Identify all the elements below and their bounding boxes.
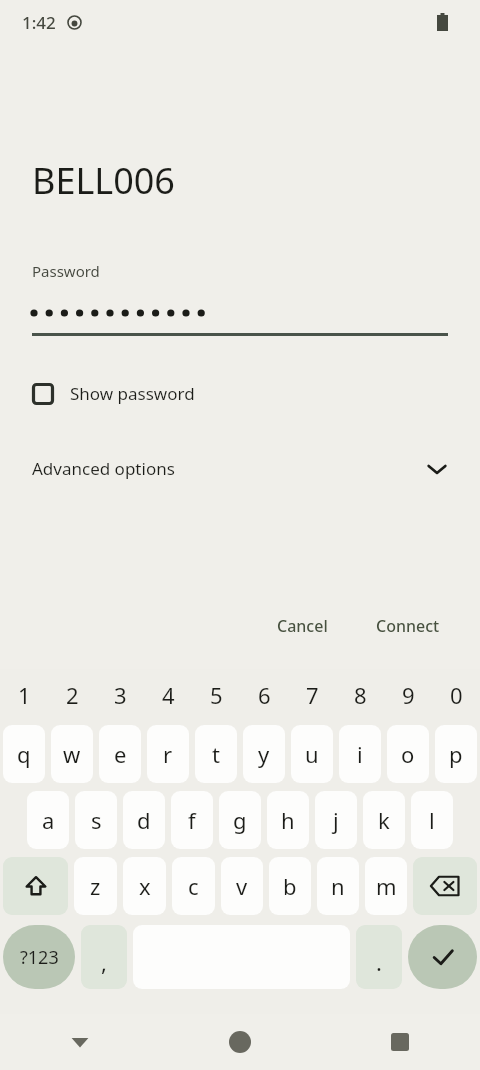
button[interactable]: 7: [288, 669, 336, 721]
staticText: y: [258, 739, 270, 769]
button[interactable]: Recents: [320, 1014, 480, 1070]
staticText: 9: [402, 680, 415, 710]
staticText: 4: [162, 680, 175, 710]
button[interactable]: ?123: [3, 925, 75, 989]
button[interactable]: .: [356, 925, 402, 989]
staticText: 2: [66, 680, 79, 710]
button[interactable]: k: [363, 791, 405, 849]
button[interactable]: s: [75, 791, 117, 849]
button[interactable]: Home: [160, 1014, 320, 1070]
staticText: 1: [18, 680, 31, 710]
button[interactable]: h: [267, 791, 309, 849]
button[interactable]: Shift: [3, 857, 68, 915]
button[interactable]: f: [171, 791, 213, 849]
staticText: g: [233, 805, 247, 835]
staticText: f: [188, 805, 196, 835]
button[interactable]: Cancel: [261, 605, 344, 647]
button[interactable]: 6: [240, 669, 288, 721]
staticText: z: [90, 871, 101, 901]
staticText: Cancel: [277, 615, 328, 637]
button[interactable]: q: [3, 725, 45, 783]
button[interactable]: c: [172, 857, 215, 915]
button[interactable]: 4: [144, 669, 192, 721]
button[interactable]: 3: [96, 669, 144, 721]
staticText: i: [357, 739, 363, 769]
button[interactable]: z: [74, 857, 117, 915]
button[interactable]: d: [123, 791, 165, 849]
staticText: n: [331, 871, 345, 901]
button[interactable]: i: [339, 725, 381, 783]
staticText: .: [376, 947, 382, 977]
staticText: ?123: [20, 945, 59, 970]
button[interactable]: 1: [0, 669, 48, 721]
button[interactable]: g: [219, 791, 261, 849]
button[interactable]: x: [123, 857, 166, 915]
button[interactable]: 5: [192, 669, 240, 721]
staticText: Advanced options: [32, 457, 175, 480]
staticText: x: [139, 871, 151, 901]
staticText: Show password: [70, 382, 195, 405]
staticText: h: [281, 805, 295, 835]
staticText: 0: [450, 680, 463, 710]
staticText: w: [63, 739, 81, 769]
button[interactable]: o: [387, 725, 429, 783]
staticText: 3: [114, 680, 127, 710]
staticText: c: [188, 871, 199, 901]
staticText: BELL006: [32, 156, 175, 205]
button[interactable]: t: [195, 725, 237, 783]
staticText: e: [114, 739, 127, 769]
button[interactable]: e: [99, 725, 141, 783]
button[interactable]: ,: [81, 925, 127, 989]
button[interactable]: Enter: [408, 925, 477, 989]
button[interactable]: Show password: [26, 376, 201, 411]
button[interactable]: y: [243, 725, 285, 783]
staticText: 6: [258, 680, 271, 710]
staticText: b: [283, 871, 297, 901]
staticText: a: [42, 805, 55, 835]
staticText: p: [449, 739, 463, 769]
button[interactable]: w: [51, 725, 93, 783]
staticText: d: [137, 805, 151, 835]
button[interactable]: n: [317, 857, 359, 915]
staticText: k: [378, 805, 390, 835]
button[interactable]: b: [269, 857, 311, 915]
button[interactable]: l: [411, 791, 453, 849]
staticText: ,: [101, 947, 107, 977]
staticText: Password: [32, 261, 100, 281]
staticText: 7: [306, 680, 319, 710]
button[interactable]: v: [221, 857, 263, 915]
button[interactable]: a: [27, 791, 69, 849]
staticText: t: [212, 739, 220, 769]
button[interactable]: u: [291, 725, 333, 783]
staticText: q: [17, 739, 31, 769]
button[interactable]: r: [147, 725, 189, 783]
button[interactable]: m: [365, 857, 407, 915]
staticText: l: [429, 805, 435, 835]
button[interactable]: 2: [48, 669, 96, 721]
staticText: r: [163, 739, 173, 769]
button[interactable]: 8: [336, 669, 384, 721]
button[interactable]: 9: [384, 669, 432, 721]
staticText: u: [305, 739, 319, 769]
button[interactable]: Advanced options: [0, 449, 480, 488]
staticText: Connect: [376, 615, 440, 637]
button[interactable]: 0: [432, 669, 480, 721]
button[interactable]: Back: [0, 1014, 160, 1070]
button[interactable]: j: [315, 791, 357, 849]
staticText: j: [333, 805, 339, 835]
button[interactable]: p: [435, 725, 477, 783]
staticText: v: [236, 871, 248, 901]
button[interactable]: Connect: [360, 605, 456, 647]
button[interactable]: Backspace: [413, 857, 477, 915]
staticText: 1:42: [22, 11, 56, 34]
staticText: m: [376, 871, 397, 901]
staticText: 5: [210, 680, 223, 710]
staticText: 8: [354, 680, 367, 710]
staticText: o: [401, 739, 415, 769]
staticText: s: [91, 805, 102, 835]
